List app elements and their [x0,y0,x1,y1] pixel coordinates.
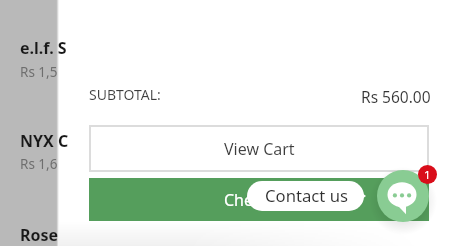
staticText: Rs 1,6 [20,155,58,173]
staticText: Rs 560.00 [361,86,431,106]
staticText: Checkout [224,189,295,211]
staticText: SUBTOTAL: [89,85,161,104]
staticText: e.l.f. S [20,37,67,59]
staticText: View Cart [224,138,295,160]
staticText: NYX C [20,130,69,152]
button[interactable]: Chat with us [377,170,429,222]
staticText: Rose [20,224,59,246]
button[interactable]: Contact us [247,181,366,211]
staticText: 1 [424,167,431,183]
button[interactable]: Checkout [89,178,429,221]
staticText: Rs 1,5 [20,63,58,81]
button[interactable]: View Cart [89,125,429,172]
staticText: Contact us [265,184,349,207]
